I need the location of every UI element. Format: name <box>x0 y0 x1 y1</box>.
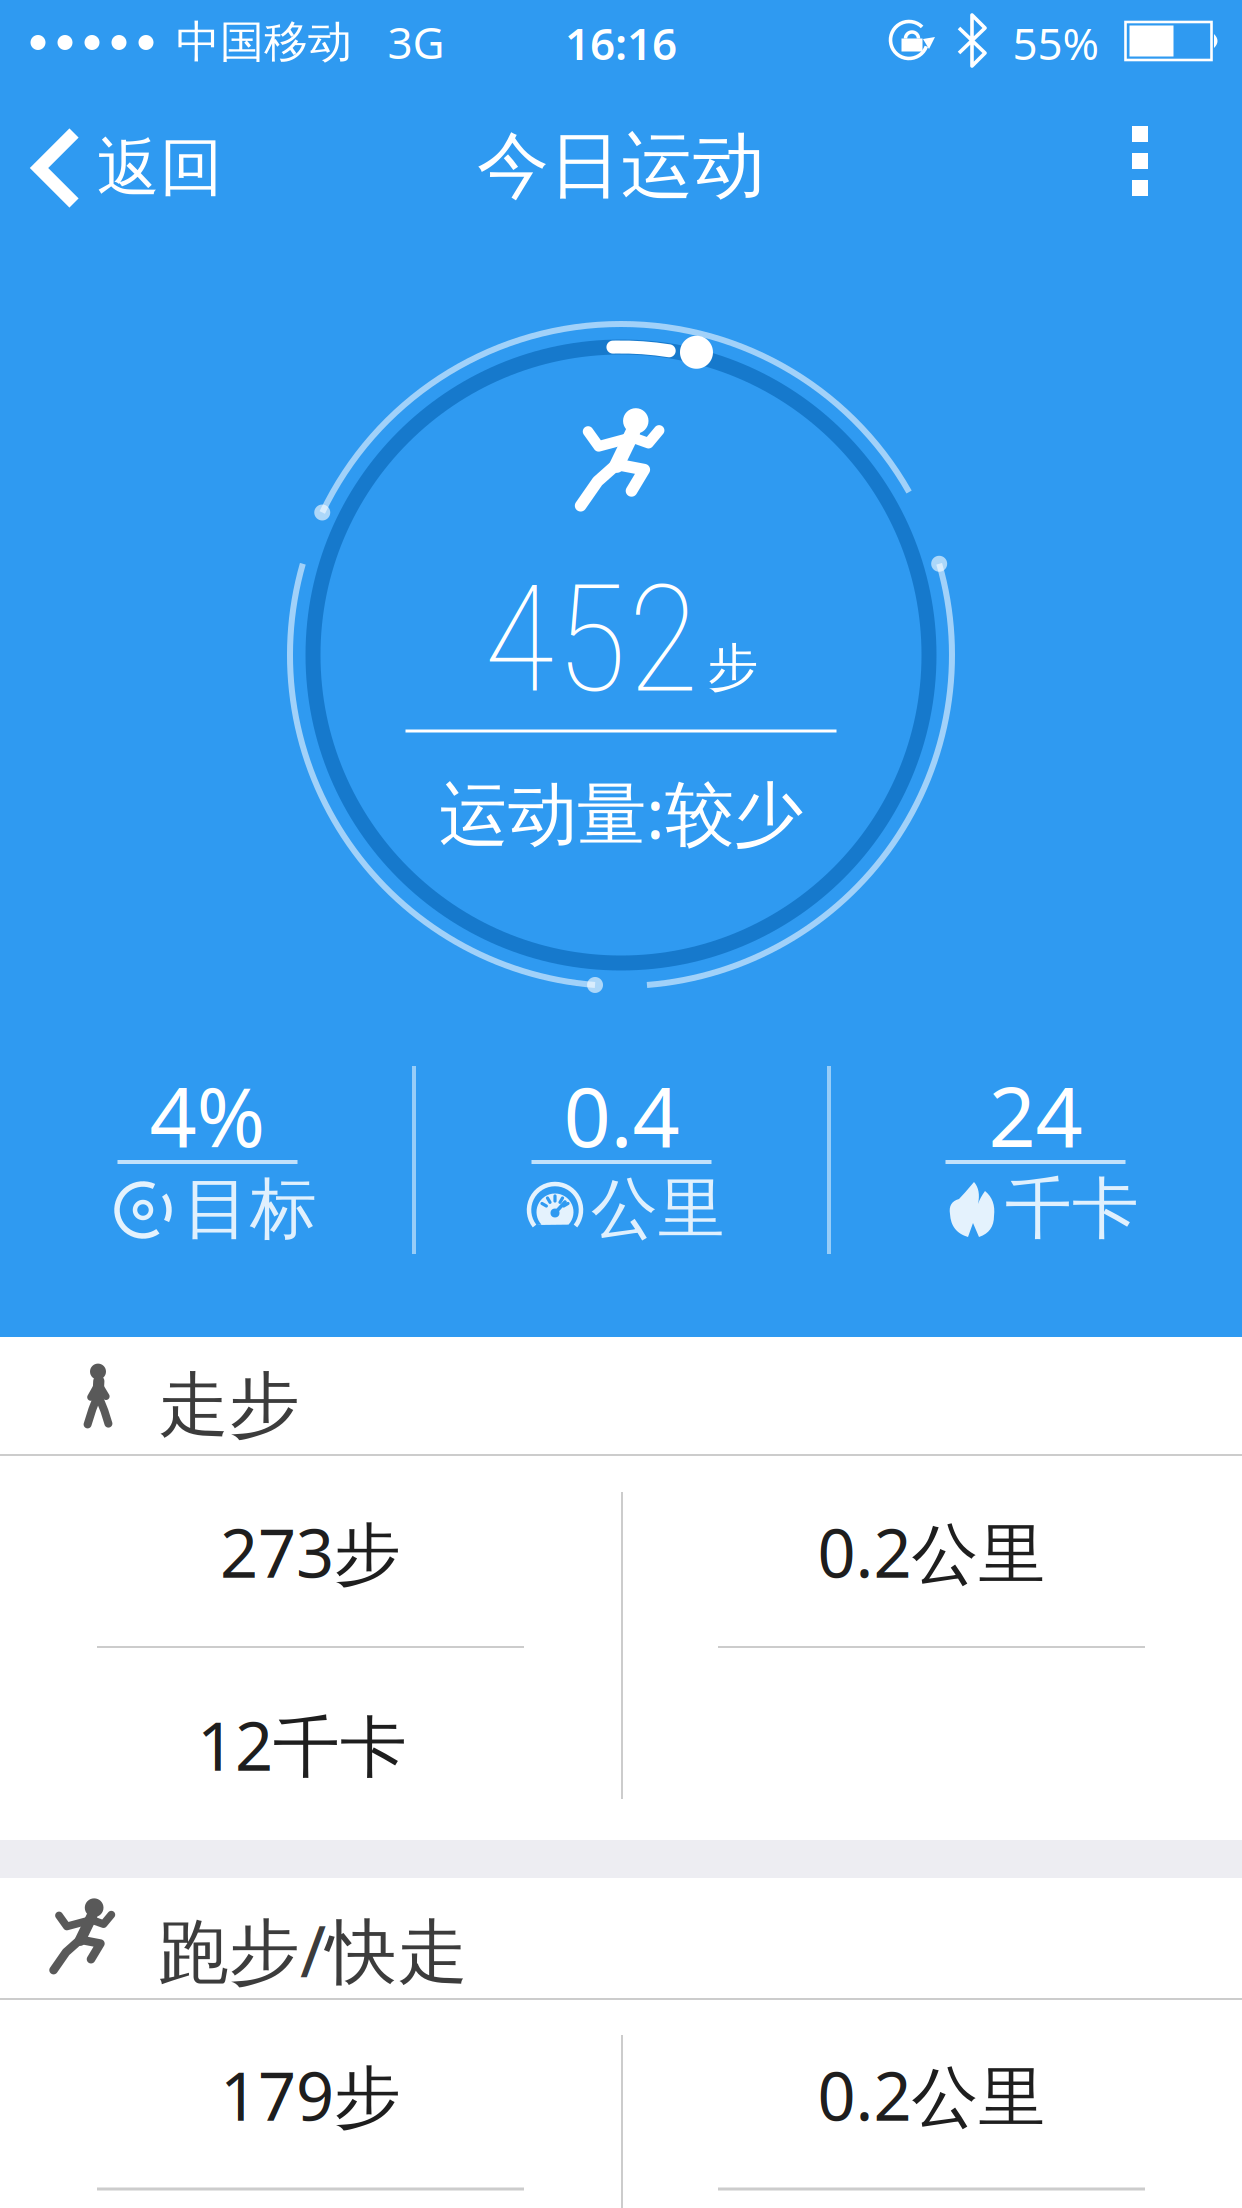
staticText: 中国移动 <box>176 15 352 69</box>
staticText: 目标 <box>183 1168 317 1250</box>
button[interactable]: 菜单 <box>1132 126 1148 196</box>
staticText: 55% <box>1012 14 1099 72</box>
staticText: 12千卡 <box>197 1701 407 1789</box>
staticText: 公里 <box>591 1168 725 1250</box>
staticText: 走步 <box>158 1362 300 1449</box>
staticText: 273步 <box>220 1508 401 1596</box>
staticText: 16:16 <box>565 14 677 72</box>
staticText: 4% <box>149 1060 265 1170</box>
staticText: 今日运动 <box>477 122 765 210</box>
staticText: 3G <box>387 13 444 71</box>
staticText: 返回 <box>97 129 223 206</box>
staticText: 跑步/快走 <box>158 1903 468 1997</box>
staticText: 千卡 <box>1005 1168 1139 1250</box>
staticText: 0.2公里 <box>817 2051 1045 2139</box>
staticText: 运动量:较少 <box>439 766 803 858</box>
staticText: 179步 <box>220 2051 401 2139</box>
staticText: 452 <box>483 553 699 727</box>
staticText: 0.4 <box>563 1060 679 1170</box>
staticText: 步 <box>707 637 758 699</box>
button[interactable]: 返回 <box>33 129 223 207</box>
staticText: 0.2公里 <box>817 1508 1045 1596</box>
staticText: 24 <box>988 1060 1082 1170</box>
